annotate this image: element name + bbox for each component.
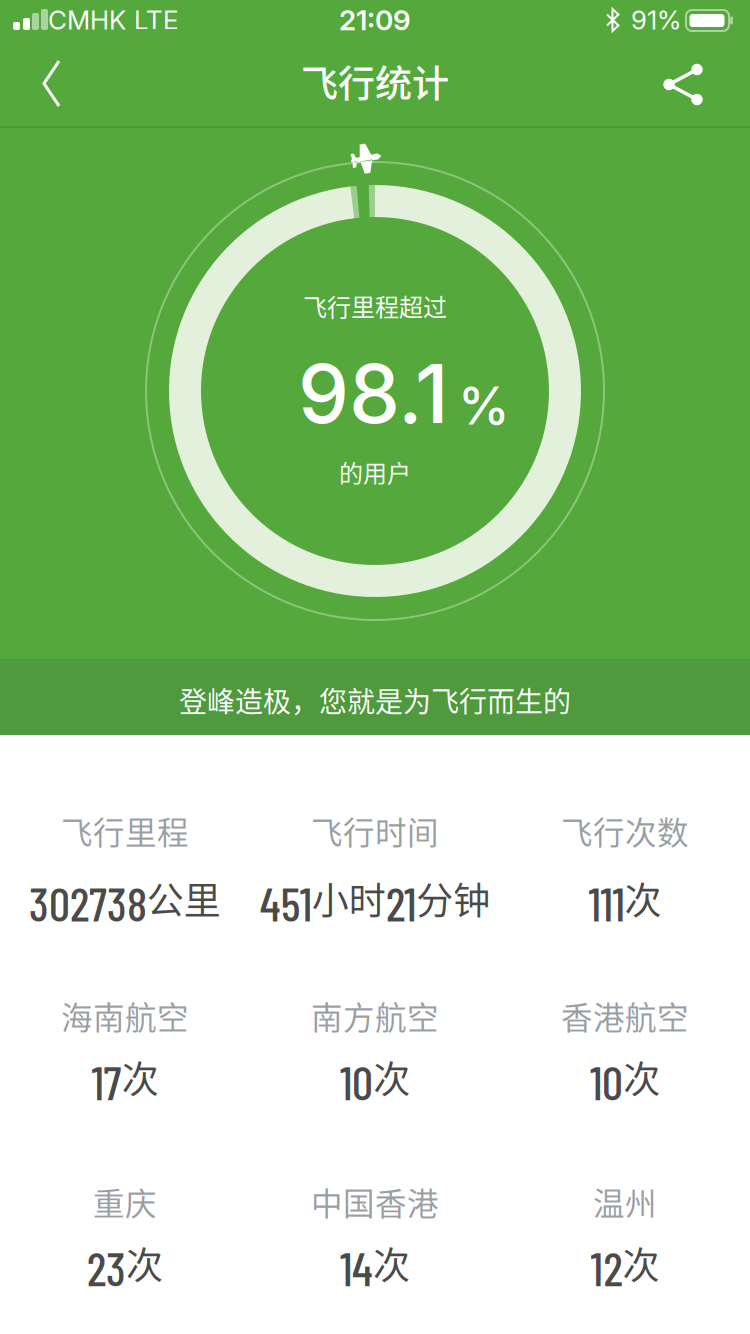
staticText: 飞行统计 (301, 54, 449, 108)
staticText: % (458, 374, 510, 437)
staticText: 重庆 (93, 1179, 157, 1224)
staticText: 小时 (312, 872, 386, 925)
button[interactable]: Share (643, 40, 723, 127)
staticText: 17 (91, 1053, 121, 1110)
staticText: 次 (373, 1050, 410, 1104)
staticText: 98.1 (298, 345, 449, 443)
button[interactable]: Back (14, 40, 90, 127)
staticText: 次 (126, 1236, 163, 1290)
staticText: 登峰造极，您就是为飞行而生的 (179, 680, 571, 720)
staticText: 的用户 (339, 455, 411, 489)
staticText: 飞行里程超过 (303, 288, 447, 323)
staticText: 14 (340, 1239, 373, 1296)
staticText: 分钟 (416, 872, 490, 925)
staticText: 21:09 (339, 3, 411, 37)
staticText: 海南航空 (61, 993, 189, 1038)
staticText: 次 (623, 1050, 660, 1104)
staticText: 次 (122, 1050, 159, 1104)
staticText: 飞行时间 (311, 808, 439, 853)
staticText: 次 (624, 872, 661, 925)
staticText: 21 (386, 875, 416, 931)
staticText: LTE (134, 4, 178, 36)
staticText: 南方航空 (311, 993, 439, 1038)
staticText: 91% (631, 4, 681, 36)
staticText: 302738 (29, 875, 147, 931)
staticText: 111 (588, 875, 624, 931)
staticText: 飞行里程 (61, 808, 189, 853)
staticText: 23 (87, 1239, 126, 1296)
staticText: 10 (590, 1053, 623, 1110)
staticText: 次 (622, 1236, 659, 1290)
staticText: CMHK (48, 4, 126, 36)
staticText: 次 (373, 1236, 410, 1290)
staticText: 香港航空 (561, 993, 689, 1038)
staticText: 451 (260, 875, 312, 931)
staticText: 中国香港 (311, 1179, 439, 1224)
staticText: 飞行次数 (561, 808, 689, 853)
staticText: 温州 (593, 1179, 657, 1224)
staticText: 公里 (147, 872, 221, 925)
staticText: 12 (590, 1239, 622, 1296)
staticText: 10 (340, 1053, 373, 1110)
